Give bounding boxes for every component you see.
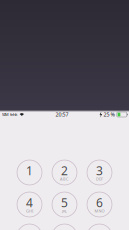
button[interactable]: 3 [82,160,117,185]
button[interactable]: 4 [12,192,47,217]
button[interactable]: 5 [47,192,82,217]
staticText: 25 % [104,111,115,118]
staticText: 5 [61,194,68,210]
staticText: GHI [26,208,33,214]
button[interactable]: 9 [82,224,117,230]
staticText: 2 [61,162,68,178]
staticText: 4 [26,194,33,210]
button[interactable]: 7 [12,224,47,230]
staticText: JKL [62,208,67,214]
staticText: 1 [26,162,33,178]
staticText: ABC [60,176,69,182]
button[interactable]: 6 [82,192,117,217]
staticText: DEF [96,176,103,182]
staticText: 6 [96,194,103,210]
staticText: 3 [96,162,103,178]
staticText: MNO [94,208,104,214]
button[interactable]: 8 [47,224,82,230]
staticText: SIM fehlt [2,112,17,117]
button[interactable]: 2 [47,160,82,185]
staticText: 20:57 [55,111,68,118]
button[interactable]: 1 [12,160,47,185]
